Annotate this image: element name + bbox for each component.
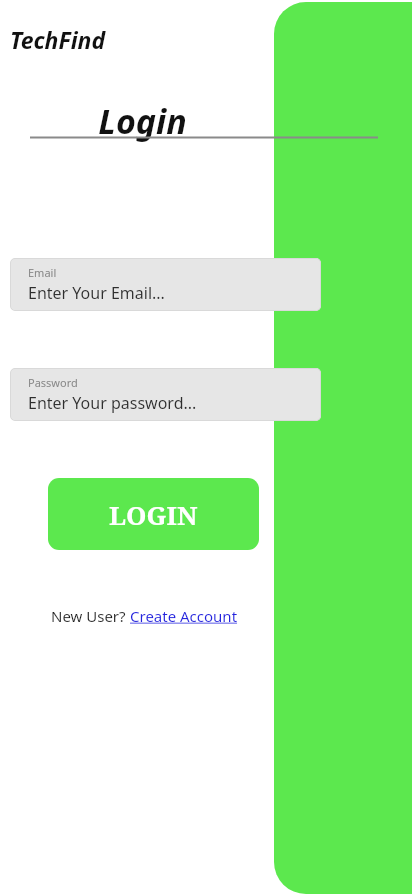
- staticText: Login: [0, 98, 285, 144]
- staticText: New User?: [51, 606, 130, 626]
- staticText: Create Account: [130, 606, 238, 626]
- button[interactable]: Email input: [10, 258, 321, 311]
- staticText: Password: [28, 375, 78, 390]
- button[interactable]: Create Account: [130, 606, 238, 626]
- button[interactable]: Password input: [10, 368, 321, 421]
- staticText: Enter Your Email...: [28, 282, 165, 304]
- staticText: TechFind: [10, 24, 106, 55]
- button[interactable]: LOGIN: [48, 478, 259, 550]
- staticText: LOGIN: [109, 497, 198, 532]
- staticText: Email: [28, 265, 57, 280]
- staticText: Enter Your password...: [28, 392, 197, 414]
